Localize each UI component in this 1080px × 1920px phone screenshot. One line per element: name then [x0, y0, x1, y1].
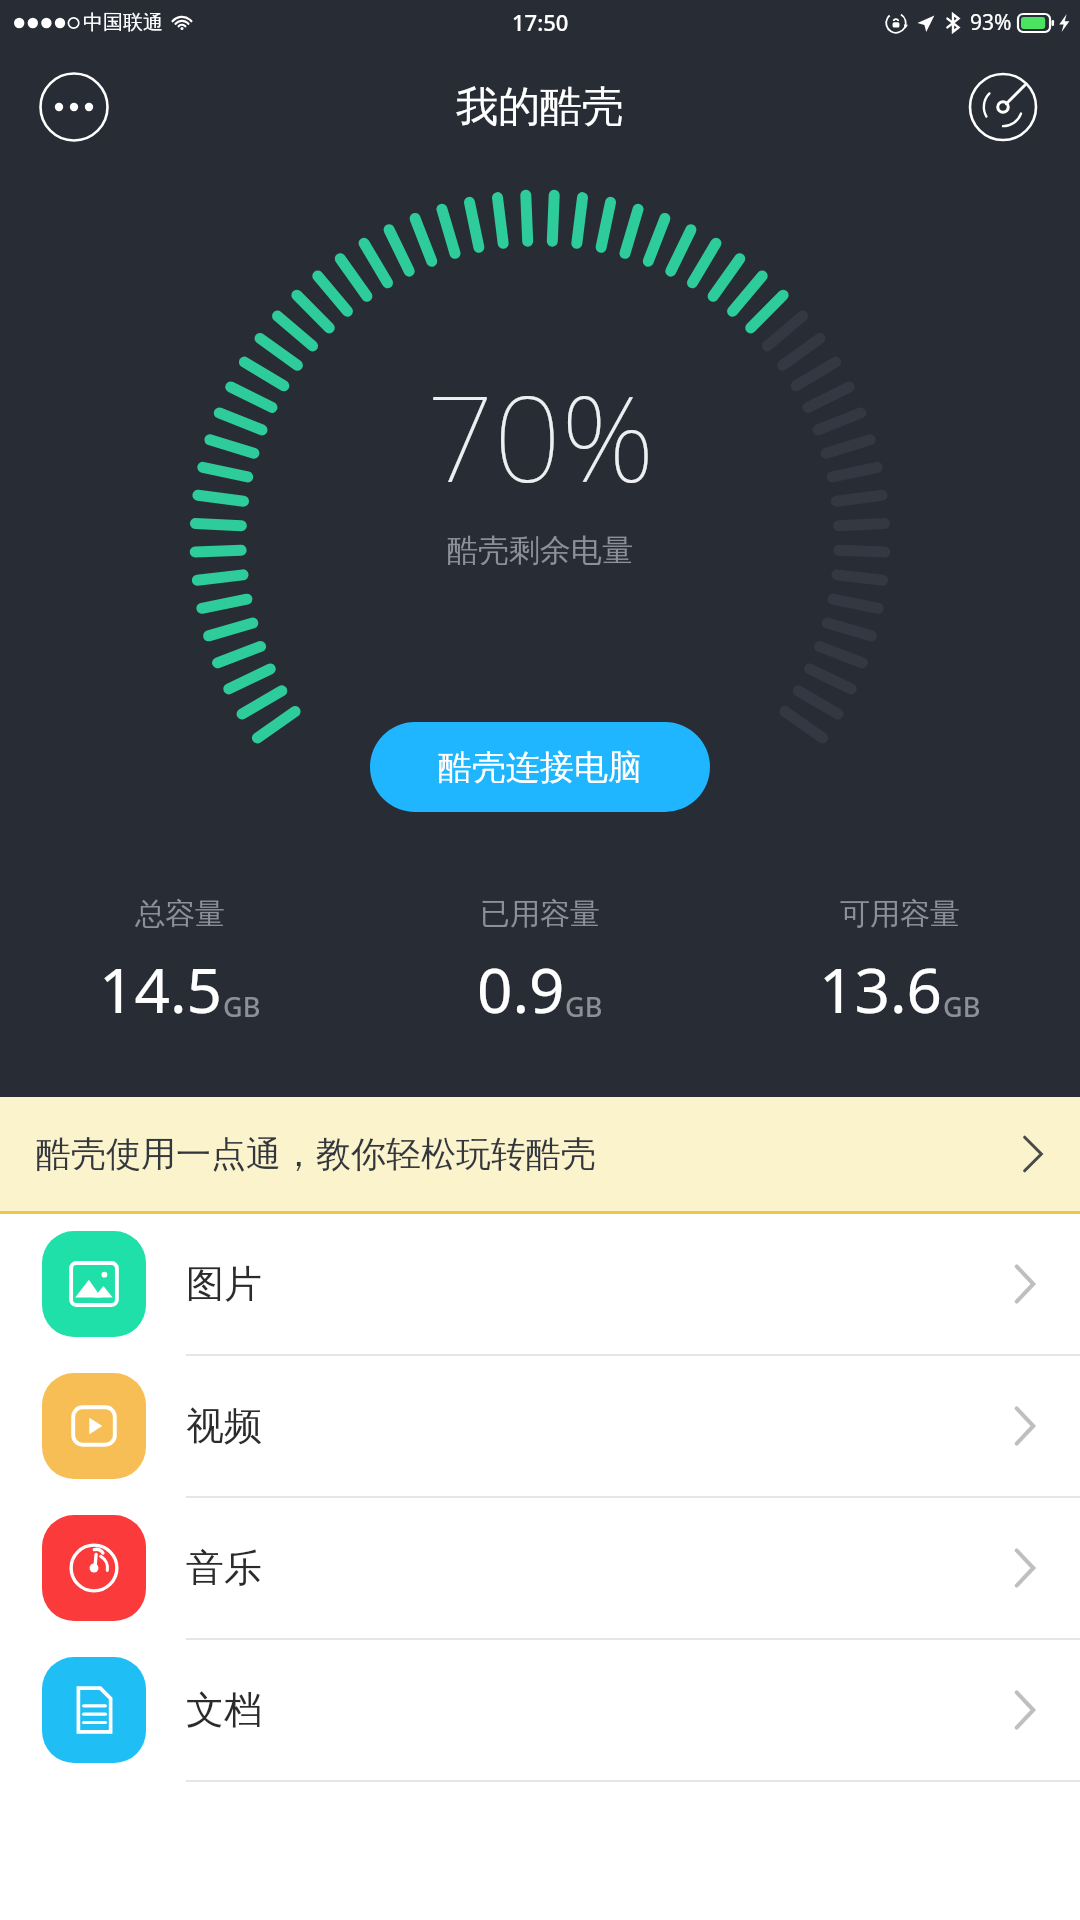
staticText: 13.6 [819, 947, 943, 1031]
staticText: GB [943, 988, 981, 1025]
button[interactable]: Disc [968, 72, 1038, 142]
staticText: 70% [426, 356, 655, 517]
button[interactable]: 视频 [0, 1356, 1080, 1496]
button[interactable]: 酷壳连接电脑 [370, 722, 710, 812]
staticText: 酷壳连接电脑 [438, 746, 642, 789]
staticText: 图片 [186, 1260, 1014, 1308]
staticText: 酷壳剩余电量 [447, 531, 633, 570]
button[interactable]: 文档 [0, 1640, 1080, 1780]
staticText: 17:50 [512, 7, 569, 37]
staticText: 总容量 [135, 895, 225, 933]
staticText: 音乐 [186, 1544, 1014, 1592]
button[interactable]: 酷壳使用一点通，教你轻松玩转酷壳 [0, 1097, 1080, 1211]
button[interactable]: 音乐 [0, 1498, 1080, 1638]
button[interactable]: 图片 [0, 1214, 1080, 1354]
staticText: 已用容量 [480, 895, 600, 933]
staticText: 14.5 [99, 947, 223, 1031]
staticText: 中国联通 [83, 10, 163, 35]
staticText: 文档 [186, 1686, 1014, 1734]
staticText: 0.9 [477, 947, 565, 1031]
staticText: GB [223, 988, 261, 1025]
staticText: GB [565, 988, 603, 1025]
staticText: 视频 [186, 1402, 1014, 1450]
staticText: 可用容量 [840, 895, 960, 933]
staticText: 酷壳使用一点通，教你轻松玩转酷壳 [36, 1132, 1022, 1176]
staticText: 93% [970, 8, 1012, 37]
staticText: 我的酷壳 [456, 81, 624, 134]
button[interactable]: More options [39, 72, 109, 142]
